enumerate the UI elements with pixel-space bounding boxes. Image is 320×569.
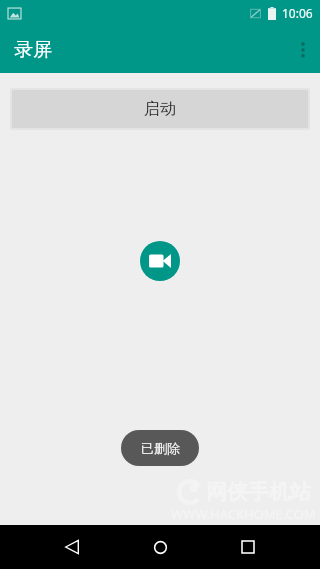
- button[interactable]: 已删除: [121, 430, 199, 466]
- staticText: 已删除: [141, 440, 180, 456]
- staticText: 启动: [144, 99, 176, 119]
- staticText: 录屏: [14, 38, 52, 62]
- button[interactable]: More options: [286, 26, 320, 73]
- button[interactable]: 启动: [12, 90, 308, 128]
- staticText: 10:06: [282, 5, 313, 21]
- button[interactable]: Home: [138, 525, 182, 569]
- button[interactable]: Back: [50, 525, 94, 569]
- button[interactable]: Record video: [140, 241, 180, 281]
- button[interactable]: Recent apps: [226, 525, 270, 569]
